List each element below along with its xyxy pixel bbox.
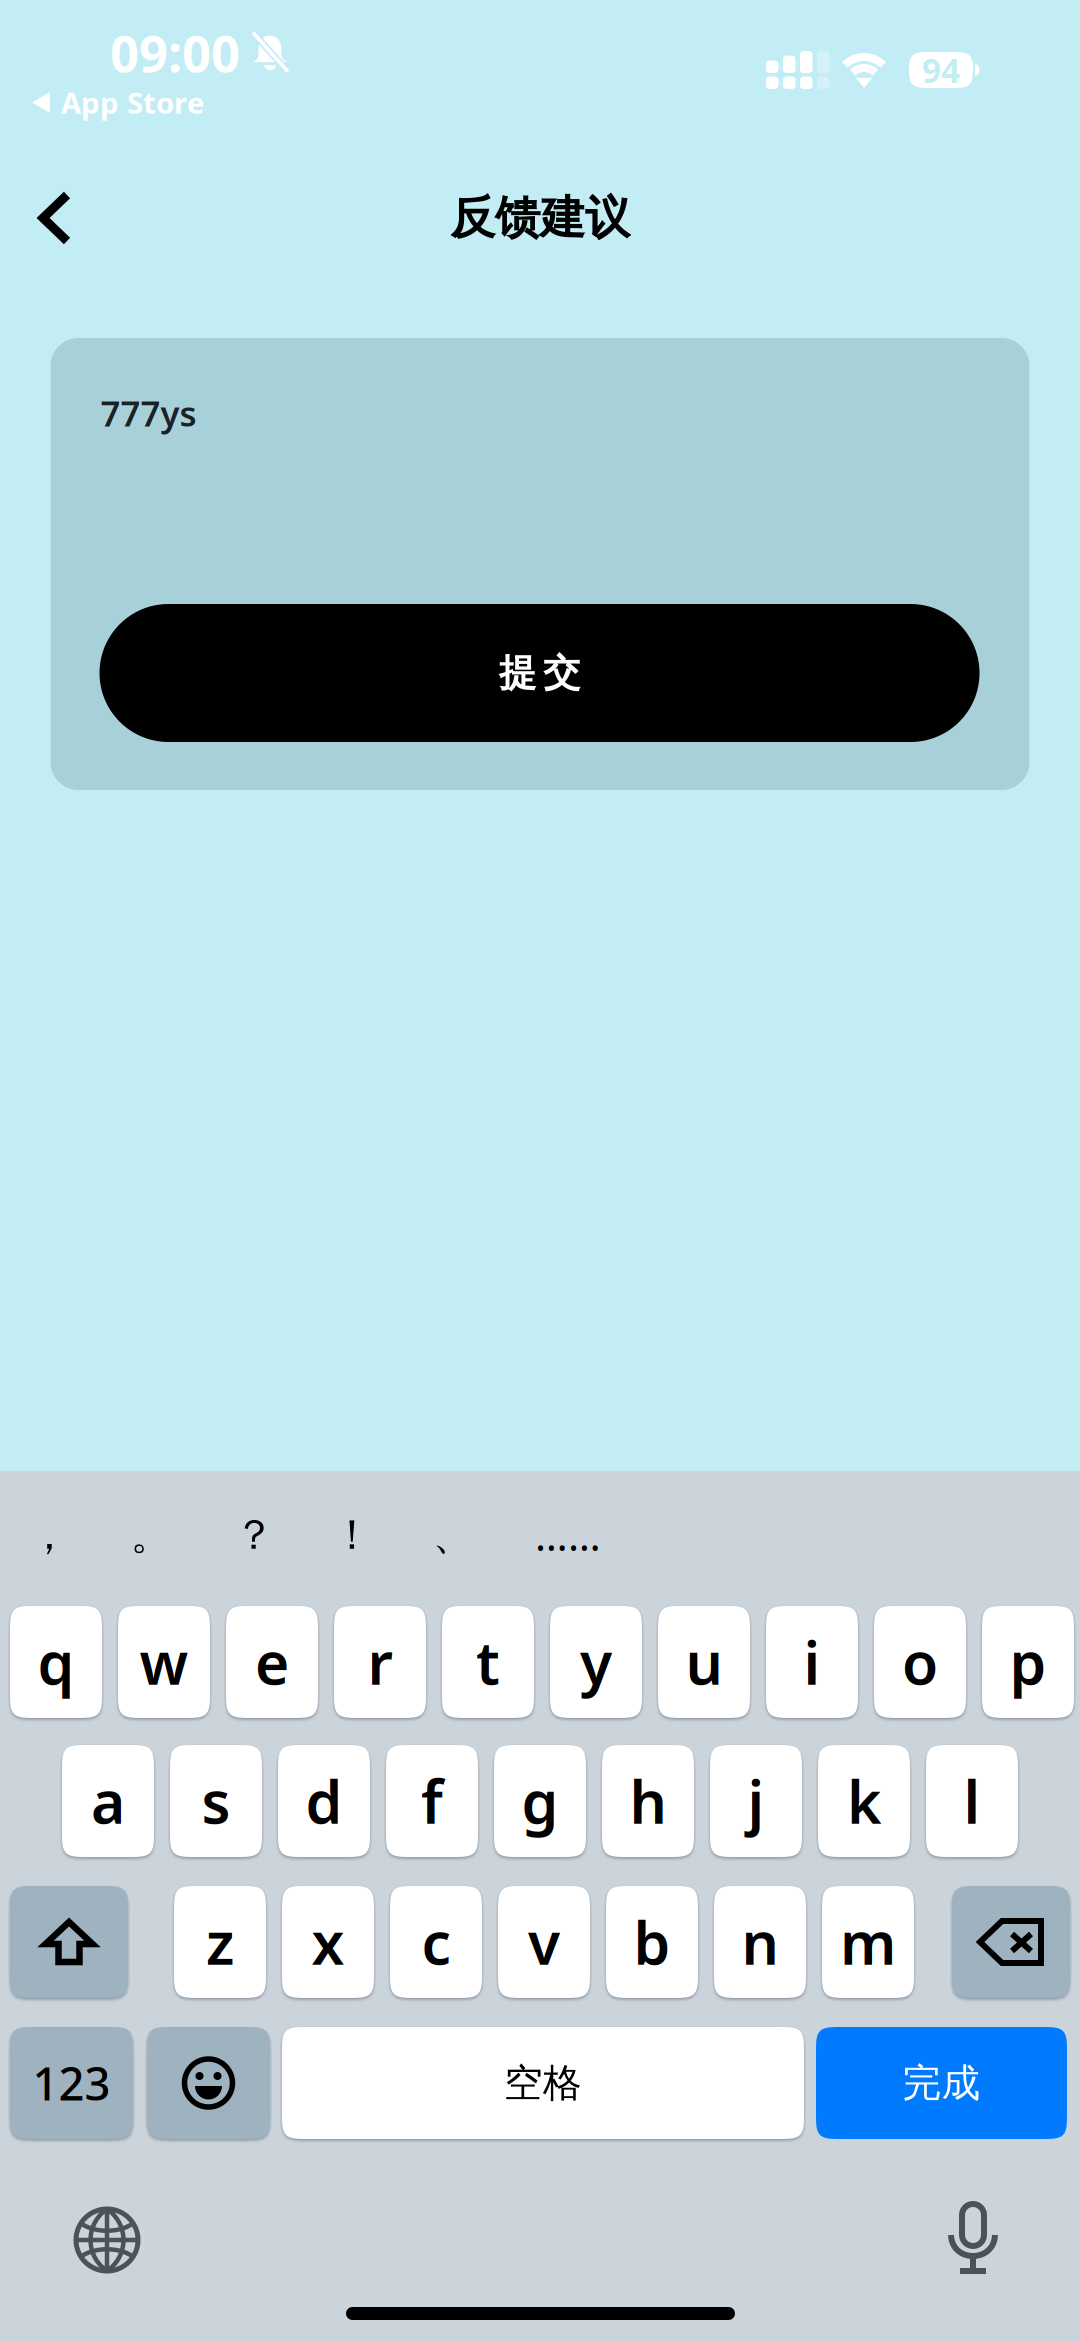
button[interactable]: s [170, 1745, 262, 1857]
button[interactable]: u [658, 1606, 750, 1718]
button[interactable]: 空格 [282, 2027, 804, 2139]
button[interactable]: t [442, 1606, 534, 1718]
staticText: l [963, 1762, 980, 1840]
staticText: 777ys [100, 390, 196, 436]
button[interactable]: j [710, 1745, 802, 1857]
staticText: …… [535, 1508, 601, 1562]
staticText: z [206, 1903, 234, 1981]
staticText: q [37, 1623, 74, 1701]
staticText: r [367, 1623, 392, 1701]
button[interactable]: v [498, 1886, 590, 1998]
button[interactable]: Dictation [923, 2187, 1023, 2287]
button[interactable]: 提交 [99, 604, 979, 742]
staticText: a [91, 1762, 125, 1840]
button[interactable]: r [334, 1606, 426, 1718]
button[interactable]: l [926, 1745, 1018, 1857]
button[interactable]: g [494, 1745, 586, 1857]
staticText: 提交 [499, 650, 580, 696]
button[interactable]: 完成 [816, 2027, 1067, 2139]
button[interactable]: k [818, 1745, 910, 1857]
button[interactable]: ？ [206, 1492, 302, 1578]
button[interactable]: Next keyboard [57, 2190, 157, 2290]
button[interactable]: d [278, 1745, 370, 1857]
staticText: 完成 [902, 2059, 980, 2107]
staticText: 09:00 [110, 19, 240, 86]
staticText: 94 [922, 48, 960, 92]
button[interactable]: i [766, 1606, 858, 1718]
button[interactable]: …… [520, 1492, 616, 1578]
staticText: ， [28, 1510, 69, 1560]
button[interactable]: ， [1, 1492, 97, 1578]
button[interactable]: ！ [304, 1492, 400, 1578]
staticText: n [741, 1903, 778, 1981]
button[interactable]: n [714, 1886, 806, 1998]
staticText: m [840, 1903, 896, 1981]
staticText: 空格 [504, 2059, 582, 2107]
staticText: v [528, 1903, 560, 1981]
button[interactable]: w [118, 1606, 210, 1718]
staticText: 123 [32, 2053, 110, 2113]
button[interactable]: b [606, 1886, 698, 1998]
button[interactable]: Back [9, 172, 101, 264]
staticText: ！ [331, 1510, 372, 1560]
staticText: u [685, 1623, 722, 1701]
button[interactable]: m [822, 1886, 914, 1998]
staticText: g [521, 1762, 558, 1840]
staticText: p [1009, 1623, 1046, 1701]
button[interactable]: Shift [10, 1886, 128, 1998]
staticText: y [580, 1623, 612, 1701]
staticText: b [633, 1903, 670, 1981]
button[interactable]: h [602, 1745, 694, 1857]
button[interactable]: Delete [952, 1886, 1070, 1998]
staticText: d [305, 1762, 342, 1840]
button[interactable]: y [550, 1606, 642, 1718]
button[interactable]: 、 [405, 1492, 501, 1578]
staticText: 反馈建议 [450, 190, 630, 246]
button[interactable]: o [874, 1606, 966, 1718]
staticText: f [421, 1762, 443, 1840]
staticText: o [902, 1623, 938, 1701]
button[interactable]: e [226, 1606, 318, 1718]
staticText: x [311, 1903, 344, 1981]
staticText: s [201, 1762, 230, 1840]
button[interactable]: p [982, 1606, 1074, 1718]
staticText: j [747, 1762, 764, 1840]
staticText: k [847, 1762, 881, 1840]
button[interactable]: x [282, 1886, 374, 1998]
button[interactable]: 。 [103, 1492, 199, 1578]
staticText: c [421, 1903, 450, 1981]
staticText: e [255, 1623, 289, 1701]
button[interactable]: Emoji [147, 2027, 270, 2139]
button[interactable]: f [386, 1745, 478, 1857]
button[interactable]: c [390, 1886, 482, 1998]
staticText: App Store [61, 83, 205, 122]
staticText: w [139, 1623, 188, 1701]
staticText: 、 [432, 1510, 473, 1560]
button[interactable]: q [10, 1606, 102, 1718]
staticText: 。 [130, 1510, 171, 1560]
button[interactable]: a [62, 1745, 154, 1857]
button[interactable]: z [174, 1886, 266, 1998]
staticText: ？ [233, 1510, 274, 1560]
staticText: i [803, 1623, 820, 1701]
button[interactable]: 123 [10, 2027, 133, 2139]
staticText: t [476, 1623, 500, 1701]
staticText: h [629, 1762, 666, 1840]
